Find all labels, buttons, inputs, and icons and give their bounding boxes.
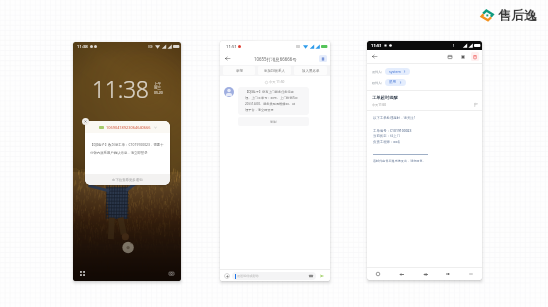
staticText: 10655打消息66666号	[254, 56, 297, 62]
staticText: 11:51	[371, 43, 382, 49]
staticText: (0)	[148, 44, 153, 49]
button[interactable]: Add attachment	[224, 273, 230, 279]
button[interactable]: 星用	[385, 79, 406, 86]
button[interactable]: 复制	[238, 117, 309, 126]
button[interactable]: Archive	[446, 53, 454, 61]
staticText: 10690418923064640666	[106, 125, 151, 130]
staticText: 05.20	[154, 90, 163, 95]
staticText: 该邮件由售后逸系统发出，请勿回复。	[373, 159, 426, 163]
button[interactable]: 举报	[223, 66, 255, 75]
staticText: !	[453, 43, 454, 48]
staticText: 11:51	[226, 44, 237, 50]
button[interactable]: Back	[223, 54, 232, 63]
staticText: 工单超时提醒	[372, 95, 398, 100]
button[interactable]: Forward	[444, 270, 452, 278]
staticText: 向下拉查看更多通知	[112, 178, 143, 182]
button[interactable]: 向下拉查看更多通知	[85, 174, 170, 185]
staticText: 以下工单处理超时，请关注!	[373, 115, 415, 120]
staticText: 上午	[154, 82, 161, 86]
staticText: 今天11:50	[372, 103, 387, 107]
button[interactable]: Close	[82, 118, 89, 125]
staticText: 添加到联系人	[264, 69, 285, 73]
staticText: 星用	[389, 80, 397, 85]
staticText: 收件人:	[372, 81, 383, 85]
button[interactable]: Send	[319, 273, 325, 279]
button[interactable]: Shortcuts	[79, 270, 86, 277]
staticText: 11:38	[77, 44, 88, 50]
button[interactable]: Camera	[168, 270, 175, 277]
button[interactable]: 售后逸 logo	[479, 7, 537, 23]
button[interactable]: 加入黑名单	[294, 66, 327, 75]
staticText: 加入黑名单	[302, 69, 320, 73]
staticText: 售后逸	[498, 7, 537, 23]
button[interactable]: 添加到联系人	[258, 66, 291, 75]
button[interactable]: Settings	[459, 53, 467, 61]
staticText: 举报	[236, 69, 243, 73]
staticText: 【DJI电子】收到新工单：C1019100023，需要十分钟内派系用户确认信息，…	[90, 142, 166, 155]
button[interactable]: More options	[467, 270, 475, 278]
button[interactable]: Delete	[471, 52, 479, 61]
button[interactable]: Reply all	[421, 270, 429, 278]
staticText: 周三	[154, 86, 161, 90]
button[interactable]: 10690418923064640666	[85, 121, 170, 185]
staticText: 发件人:	[372, 70, 383, 74]
staticText: 11:38	[92, 73, 149, 104]
button[interactable]: Back	[370, 52, 379, 61]
staticText: 当前状态：待上门	[373, 134, 401, 138]
button[interactable]: Details	[319, 55, 327, 62]
staticText: 今天 11:50	[269, 80, 285, 84]
button[interactable]: Reply	[397, 270, 405, 278]
staticText: 复制	[270, 120, 277, 124]
staticText: (0)	[296, 44, 301, 49]
staticText: 发送短信或彩信	[237, 274, 259, 278]
staticText: system	[389, 69, 401, 74]
button[interactable]: Mark unread	[374, 270, 382, 278]
staticText: 工单编号：C1019100023	[373, 128, 412, 133]
staticText: 【DJI电子】您有上门服务任务待处理。上门工单号：xx号。上门时间5月20日14…	[245, 90, 298, 112]
button[interactable]: 发送短信或彩信	[235, 272, 313, 280]
button[interactable]: system	[385, 68, 410, 75]
staticText: 负责工程师：xx名	[373, 139, 401, 144]
